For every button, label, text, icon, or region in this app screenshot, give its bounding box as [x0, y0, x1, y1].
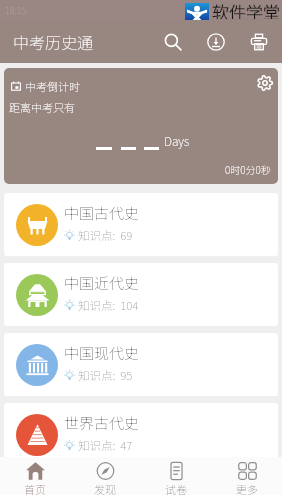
button[interactable]: 中考倒计时	[4, 68, 278, 184]
staticText: 世界古代史	[64, 412, 140, 434]
button[interactable]: 试卷	[140, 457, 211, 495]
button[interactable]: 中国古代史	[4, 193, 278, 256]
button[interactable]: 首页	[0, 457, 70, 495]
staticText: 知识点: 47	[78, 437, 133, 454]
staticText: 知识点: 104	[78, 297, 139, 314]
staticText: 中国古代史	[64, 202, 140, 224]
staticText: 知识点: 69	[78, 227, 133, 244]
button[interactable]: 中国现代史	[4, 333, 278, 396]
staticText: 中国现代史	[64, 342, 140, 364]
staticText: 18:15	[5, 4, 26, 17]
staticText: Days	[164, 132, 190, 149]
button[interactable]: 更多	[211, 457, 282, 495]
staticText: 试卷	[165, 481, 187, 495]
staticText: 发现	[94, 481, 116, 495]
button[interactable]: 世界古代史	[4, 403, 278, 466]
button[interactable]: 中国近代史	[4, 263, 278, 326]
staticText: 软件学堂	[212, 0, 280, 19]
staticText: 更多	[236, 481, 258, 495]
button[interactable]: Print	[242, 25, 276, 59]
button[interactable]: Search	[156, 25, 190, 59]
button[interactable]: 发现	[70, 457, 140, 495]
staticText: 中国近代史	[64, 272, 140, 294]
staticText: 0时0分0秒	[225, 162, 271, 176]
staticText: www.xue51.com	[216, 15, 263, 24]
staticText: 知识点: 95	[78, 367, 133, 384]
button[interactable]: Settings	[252, 70, 277, 95]
staticText: 首页	[24, 481, 46, 495]
staticText: 中考历史通	[13, 30, 94, 53]
staticText: 距离中考只有	[9, 99, 75, 115]
staticText: 中考倒计时	[25, 78, 80, 94]
button[interactable]: Download	[199, 25, 233, 59]
